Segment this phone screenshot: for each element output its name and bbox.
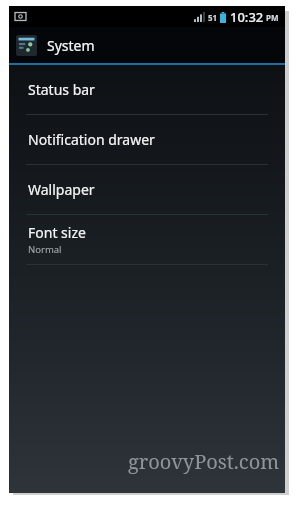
- button[interactable]: Wallpaper: [9, 165, 285, 214]
- staticText: Normal: [28, 243, 62, 256]
- button[interactable]: Font size: [9, 215, 285, 264]
- other: Screenshot captured: [15, 11, 26, 22]
- staticText: System: [47, 36, 95, 55]
- staticText: Status bar: [28, 80, 95, 99]
- button[interactable]: System: [9, 27, 285, 63]
- staticText: 51: [208, 12, 218, 23]
- staticText: PM: [266, 12, 279, 23]
- button[interactable]: Status bar: [9, 65, 285, 114]
- staticText: groovyPost.com: [128, 448, 280, 475]
- staticText: Wallpaper: [28, 180, 95, 199]
- staticText: Font size: [28, 223, 86, 242]
- button[interactable]: Notification drawer: [9, 115, 285, 164]
- staticText: 10:32: [230, 8, 264, 26]
- staticText: Notification drawer: [28, 130, 155, 149]
